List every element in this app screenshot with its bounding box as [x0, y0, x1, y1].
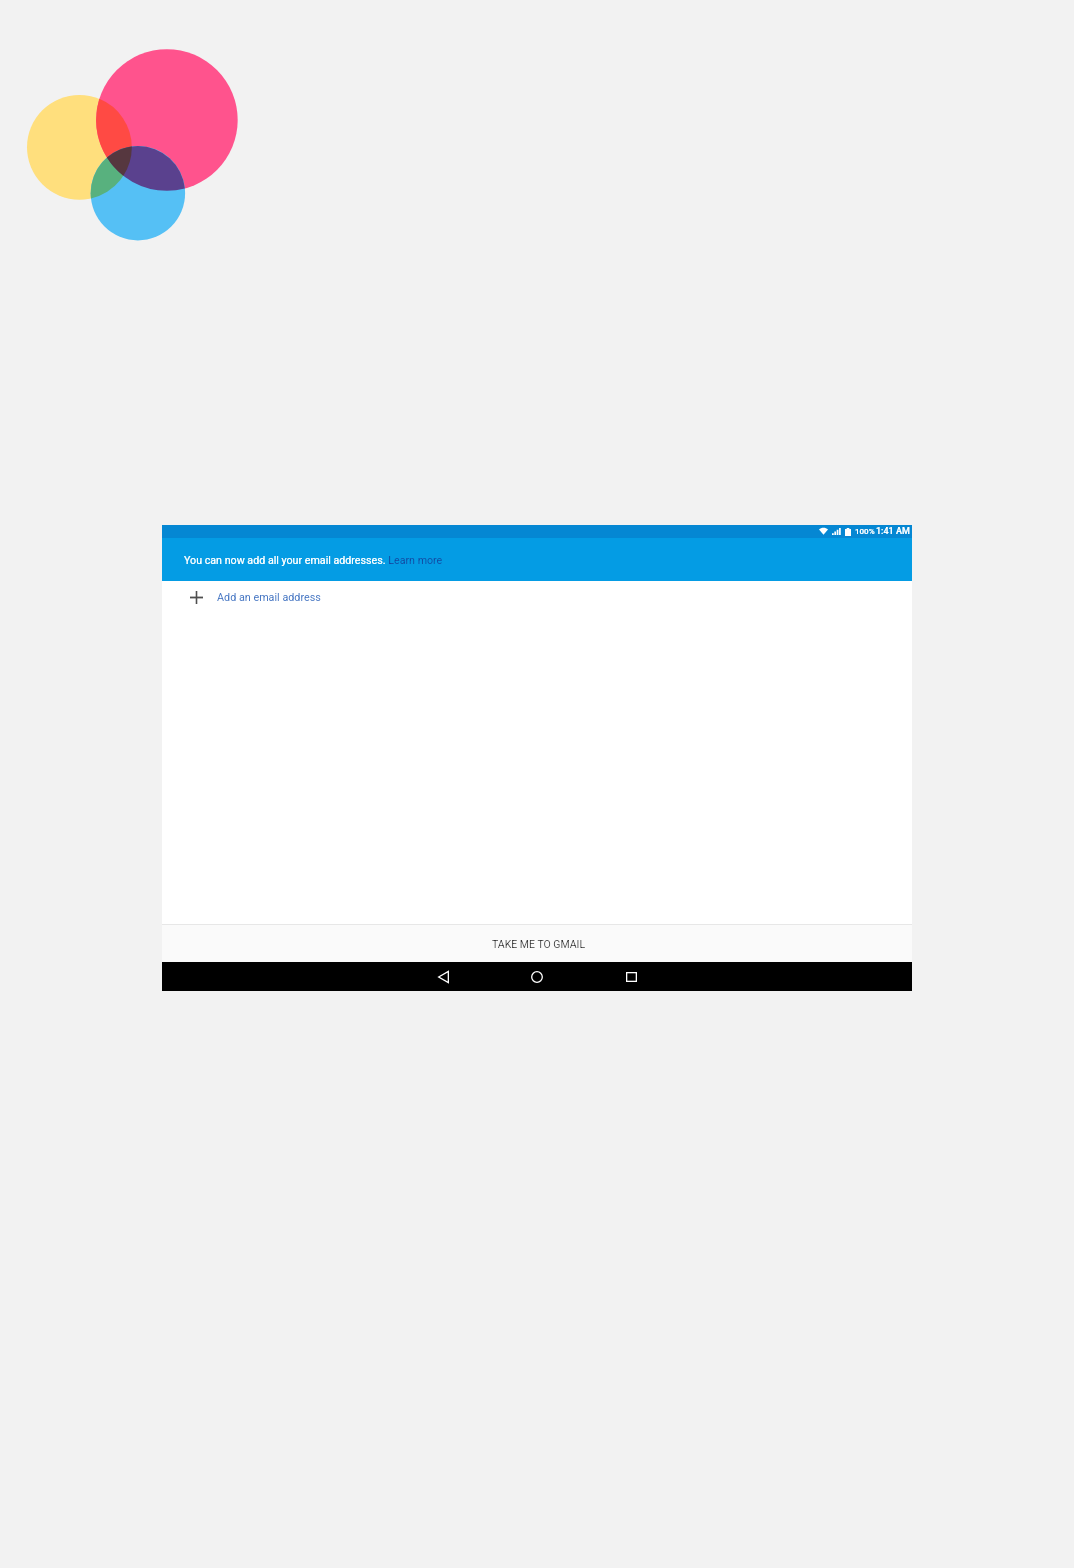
staticText: 100% [855, 527, 875, 536]
button[interactable]: You can now add all your email addresses… [184, 554, 443, 567]
button[interactable]: Home [519, 962, 555, 991]
staticText: Add an email address [217, 591, 321, 604]
button[interactable]: Add an email address [162, 581, 912, 613]
button[interactable]: Back [425, 962, 461, 991]
staticText: TAKE ME TO GMAIL [492, 938, 586, 950]
button[interactable]: Recent apps [613, 962, 649, 991]
button[interactable]: TAKE ME TO GMAIL [162, 925, 912, 962]
button[interactable]: You can now add all your email addresses… [162, 538, 912, 581]
staticText: 1:41 AM [876, 526, 910, 537]
